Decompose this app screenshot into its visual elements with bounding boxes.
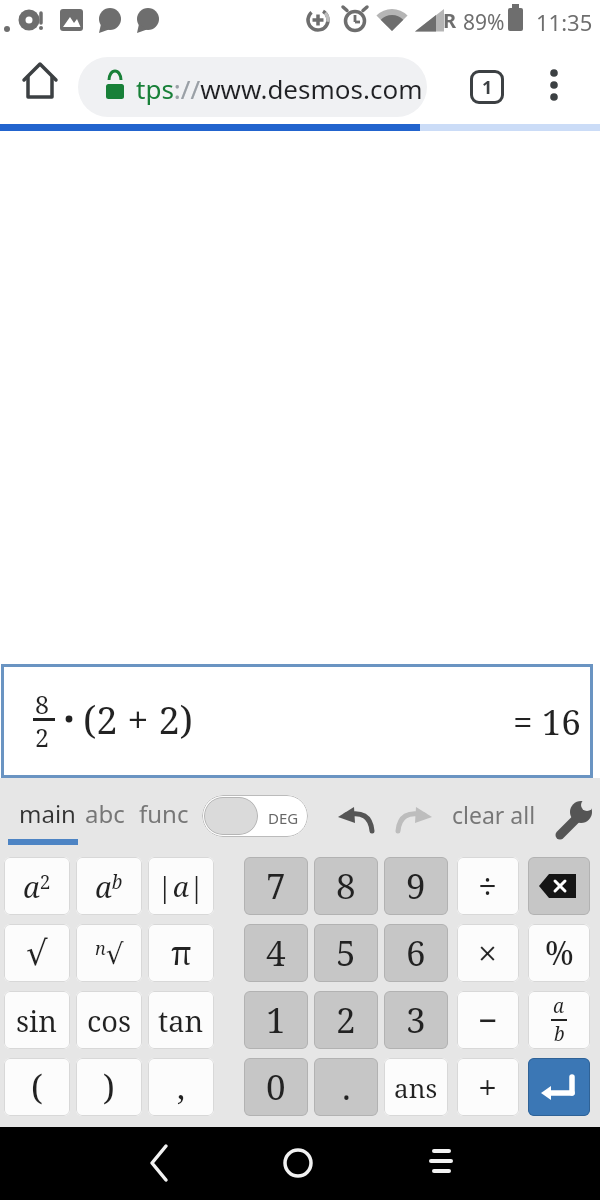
staticText: × [478,930,498,976]
staticText: − [478,997,498,1043]
staticText: a [553,993,565,1019]
button[interactable] [130,1137,186,1191]
button[interactable]: π [148,924,214,982]
staticText: b [554,1021,565,1047]
staticText: 8 [35,687,49,721]
staticText: 1 [482,75,493,100]
button[interactable] [330,795,380,840]
button[interactable]: 0 [244,1058,308,1116]
button[interactable] [412,1137,468,1191]
staticText: + [478,1064,498,1110]
staticText: DEG [268,808,299,828]
staticText: ÷ [478,863,498,909]
staticText: 6 [406,929,426,977]
button[interactable]: 3 [384,991,448,1049]
staticText: 9 [406,862,426,910]
staticText: ) [103,1064,115,1110]
staticText: (2 + 2) [83,693,193,745]
staticText: , [177,1065,186,1109]
button[interactable]: √ [4,924,70,982]
button[interactable]: 1 [470,70,504,104]
staticText: π [171,931,192,975]
staticText: a2 [23,867,51,906]
button[interactable] [270,1137,326,1191]
button[interactable] [8,786,78,838]
button[interactable] [134,786,192,838]
button[interactable] [444,790,540,834]
button[interactable]: 9 [384,857,448,915]
staticText: 2 [35,720,49,754]
button[interactable]: ans [384,1058,448,1116]
button[interactable]: 8 [314,857,378,915]
button[interactable]: , [148,1058,214,1116]
button[interactable]: × [457,924,519,982]
button[interactable]: 6 [384,924,448,982]
staticText: ans [394,1070,438,1105]
button[interactable] [80,786,130,838]
staticText: cos [87,1001,132,1040]
staticText: main [19,797,76,830]
staticText: 7 [266,862,286,910]
staticText: |a| [157,867,205,905]
staticText: clear all [452,799,536,830]
staticText: ab [95,867,123,906]
button[interactable]: n√ [76,924,142,982]
staticText: R [443,7,457,34]
staticText: 5 [336,929,356,977]
button[interactable]: + [457,1058,519,1116]
button[interactable]: . [314,1058,378,1116]
button[interactable]: tan [148,991,214,1049]
button[interactable]: 5 [314,924,378,982]
button[interactable] [385,795,435,840]
button[interactable]: ab [76,857,142,915]
button[interactable] [538,55,570,111]
button[interactable]: ( [4,1058,70,1116]
button[interactable]: 1 [244,991,308,1049]
staticText: 2 [336,996,356,1044]
staticText: n√ [95,936,124,971]
button[interactable]: sin [4,991,70,1049]
button[interactable]: − [457,991,519,1049]
staticText: tan [158,1001,204,1040]
staticText: ( [31,1064,43,1110]
button[interactable]: % [528,924,590,982]
button[interactable]: tps://www.desmos.com [78,57,427,117]
staticText: √ [26,933,48,973]
button[interactable] [528,857,590,915]
staticText: abc [85,797,125,830]
staticText: 0 [266,1063,286,1111]
staticText: func [139,797,189,830]
button[interactable] [18,55,62,111]
staticText: 1 [266,996,286,1044]
staticText: = 16 [513,698,581,746]
button[interactable]: ÷ [457,857,519,915]
button[interactable]: |a| [148,857,214,915]
staticText: 4 [266,929,286,977]
staticText: 89% [463,8,505,37]
staticText: 3 [406,996,426,1044]
button[interactable]: 4 [244,924,308,982]
button[interactable]: 7 [244,857,308,915]
button[interactable] [548,795,594,840]
staticText: 11:35 [536,7,593,37]
button[interactable]: 8 [1,664,593,778]
staticText: % [545,931,574,975]
button[interactable]: a [528,991,590,1049]
staticText: sin [16,1001,58,1040]
button[interactable]: ) [76,1058,142,1116]
button[interactable]: 2 [314,991,378,1049]
button[interactable]: a2 [4,857,70,915]
staticText: 8 [336,862,356,910]
button[interactable] [528,1058,590,1116]
button[interactable]: cos [76,991,142,1049]
staticText: . [342,1063,351,1111]
staticText: tps://www.desmos.com [136,71,423,106]
button[interactable]: DEG [202,795,308,837]
